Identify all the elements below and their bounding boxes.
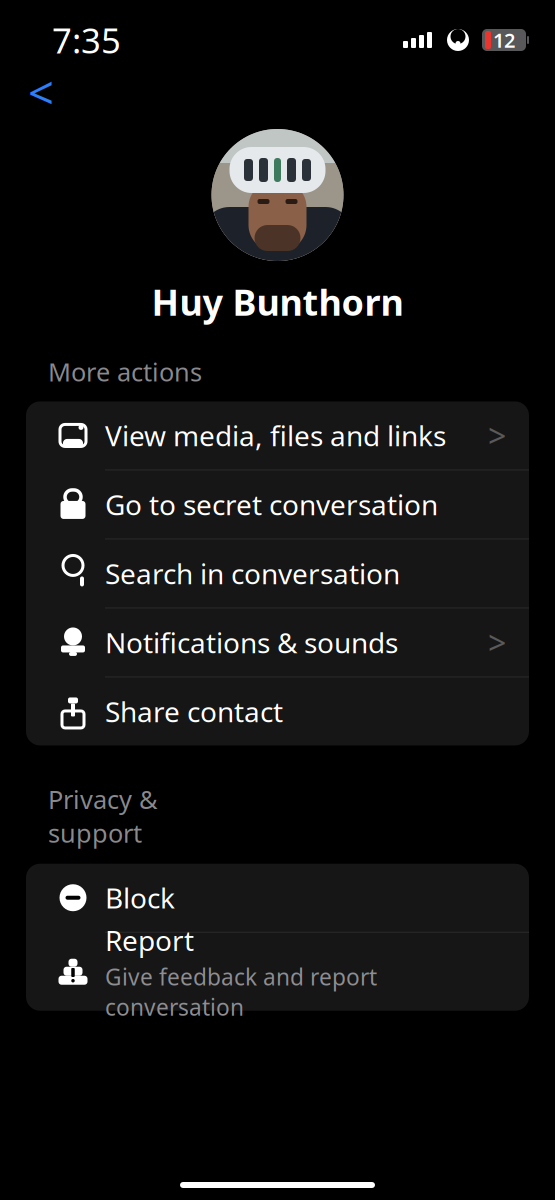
staticText: View media, files and links xyxy=(105,417,446,454)
staticText: Share contact xyxy=(105,693,283,730)
staticText: < xyxy=(28,62,54,122)
staticText: Notifications & sounds xyxy=(105,624,398,661)
button[interactable]: Notifications & sounds xyxy=(26,608,529,677)
staticText: > xyxy=(488,621,506,664)
staticText: Give feedback and report conversation xyxy=(105,962,377,1022)
staticText: > xyxy=(488,414,506,457)
button[interactable]: Report xyxy=(26,933,529,1011)
button[interactable]: Share contact xyxy=(26,677,529,745)
staticText: Huy Bunthorn xyxy=(151,278,403,326)
button[interactable]: Go to secret conversation xyxy=(26,470,529,539)
staticText: Privacy & support xyxy=(48,782,158,850)
button[interactable]: Back xyxy=(16,67,66,117)
button[interactable]: Search in conversation xyxy=(26,539,529,608)
staticText: 7:35 xyxy=(52,17,121,63)
staticText: 12 xyxy=(493,27,515,53)
staticText: Go to secret conversation xyxy=(105,486,438,523)
staticText: Search in conversation xyxy=(105,555,400,592)
staticText: Block xyxy=(105,879,175,916)
staticText: Report xyxy=(105,921,194,959)
button[interactable]: View media, files and links xyxy=(26,401,529,470)
staticText: More actions xyxy=(48,355,202,388)
button[interactable]: Block xyxy=(26,864,529,933)
